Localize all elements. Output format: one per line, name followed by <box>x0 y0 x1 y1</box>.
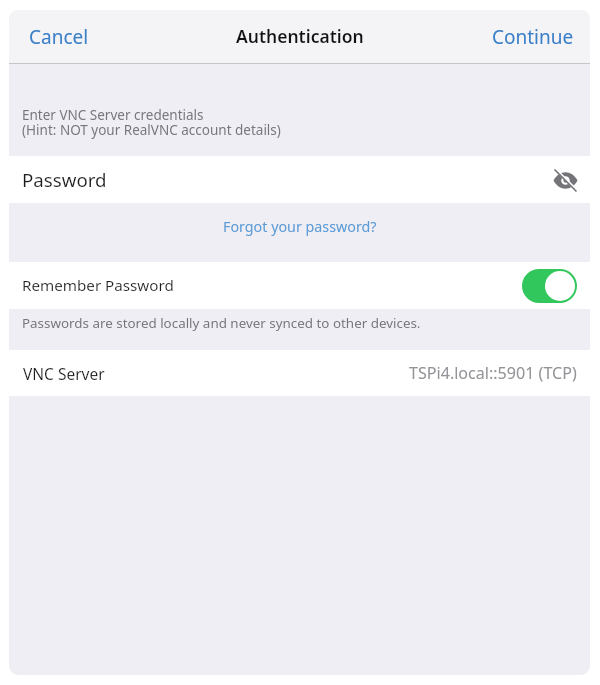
button[interactable]: Password <box>9 156 590 203</box>
button[interactable]: Continue <box>476 16 590 58</box>
button[interactable]: Cancel <box>9 16 105 58</box>
button[interactable]: Remember Password toggle <box>522 269 577 303</box>
button[interactable]: Show password <box>548 163 582 197</box>
staticText: Remember Password <box>22 275 174 296</box>
button[interactable]: VNC Server <box>9 350 590 396</box>
button[interactable]: Remember Password <box>9 262 590 309</box>
staticText: Password <box>22 167 107 192</box>
button[interactable]: Forgot your password? <box>9 203 590 262</box>
staticText: VNC Server <box>23 363 105 384</box>
staticText: Passwords are stored locally and never s… <box>22 314 421 332</box>
staticText: Authentication <box>236 24 364 48</box>
staticText: Enter VNC Server credentials (Hint: NOT … <box>22 106 281 139</box>
staticText: Cancel <box>29 24 89 50</box>
staticText: Continue <box>492 24 574 50</box>
staticText: Forgot your password? <box>223 217 377 236</box>
staticText: TSPi4.local::5901 (TCP) <box>409 362 577 384</box>
